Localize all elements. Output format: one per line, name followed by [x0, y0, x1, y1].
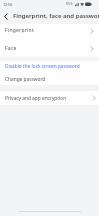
button[interactable]: Change password [0, 73, 99, 85]
button[interactable]: Fingerprint [0, 24, 99, 41]
staticText: Fingerprint, face and password [13, 12, 99, 20]
button[interactable]: Disable the lock screen password [0, 61, 99, 73]
staticText: 85% [66, 1, 73, 6]
staticText: Disable the lock screen password [5, 63, 80, 70]
staticText: Change password [5, 76, 46, 83]
button[interactable]: Fingerprint, face and password [0, 9, 99, 23]
button[interactable]: Face [0, 41, 99, 58]
staticText: 12:56 [3, 2, 13, 7]
staticText: Privacy and app encryption [5, 95, 67, 102]
staticText: Fingerprint [5, 27, 35, 34]
staticText: Face [5, 45, 17, 52]
button[interactable]: Privacy and app encryption [0, 91, 99, 105]
